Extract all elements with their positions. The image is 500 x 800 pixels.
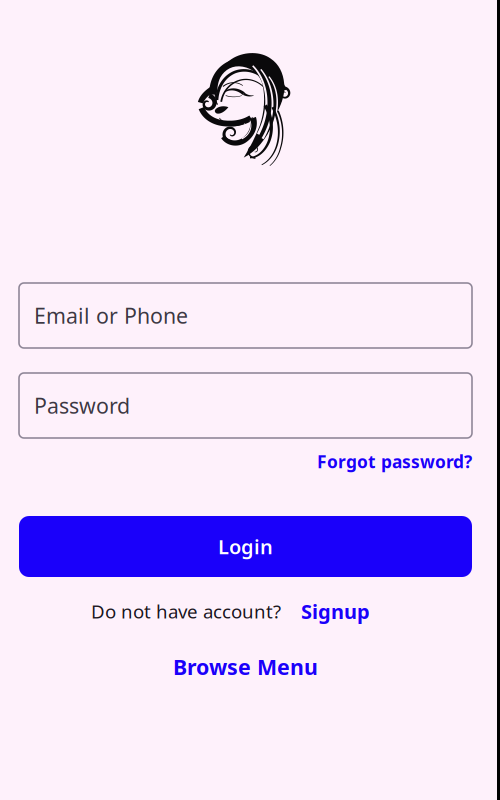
staticText: Forgot password? — [317, 450, 472, 473]
staticText: Browse Menu — [173, 653, 318, 681]
staticText: Password — [34, 391, 130, 420]
staticText: Login — [218, 533, 273, 560]
staticText: Email or Phone — [34, 301, 188, 330]
button[interactable]: Login — [19, 516, 472, 577]
staticText: Signup — [301, 598, 370, 625]
button[interactable]: Forgot password? — [317, 450, 472, 473]
staticText: Do not have account? — [91, 599, 281, 624]
button[interactable]: Browse Menu — [173, 653, 318, 681]
button[interactable]: Signup — [301, 598, 370, 625]
